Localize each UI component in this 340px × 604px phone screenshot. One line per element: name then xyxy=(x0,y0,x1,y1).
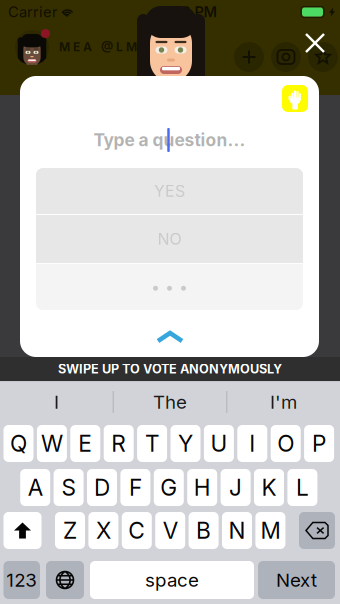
button[interactable]: Next xyxy=(258,561,335,599)
staticText: O xyxy=(277,430,294,457)
button[interactable]: P xyxy=(304,425,334,462)
button[interactable]: Favorites xyxy=(308,42,338,72)
staticText: 123 xyxy=(6,569,37,591)
staticText: H xyxy=(194,474,211,501)
button[interactable]: N xyxy=(222,512,252,549)
button[interactable]: I xyxy=(237,425,267,462)
button[interactable]: F xyxy=(120,469,150,506)
staticText: A xyxy=(28,474,43,501)
button[interactable]: C xyxy=(122,512,152,549)
staticText: D xyxy=(94,474,110,501)
staticText: J xyxy=(229,474,242,501)
button[interactable]: I'm xyxy=(227,381,340,423)
button[interactable]: E xyxy=(70,425,100,462)
button[interactable]: Close xyxy=(299,27,331,59)
staticText: L xyxy=(296,474,309,501)
staticText: Z xyxy=(63,517,77,544)
staticText: W xyxy=(41,430,63,457)
button[interactable]: X xyxy=(88,512,118,549)
button[interactable]: space xyxy=(90,561,254,599)
button[interactable]: The xyxy=(114,381,226,423)
button[interactable]: V xyxy=(155,512,185,549)
button[interactable]: Add xyxy=(234,42,264,72)
button[interactable]: J xyxy=(221,469,251,506)
button[interactable]: Y xyxy=(170,425,200,462)
button[interactable]: T xyxy=(137,425,167,462)
button[interactable]: Delete xyxy=(299,512,335,549)
staticText: X xyxy=(96,517,111,544)
button[interactable]: I xyxy=(0,381,113,423)
button[interactable]: Shift xyxy=(3,512,41,549)
button[interactable]: Next keyboard xyxy=(46,561,84,599)
staticText: NO xyxy=(157,229,181,249)
button[interactable]: H xyxy=(187,469,217,506)
staticText: U xyxy=(210,430,227,457)
button[interactable]: A xyxy=(20,469,50,506)
button[interactable]: L xyxy=(287,469,317,506)
button[interactable]: K xyxy=(254,469,284,506)
staticText: P xyxy=(312,430,326,457)
button[interactable]: Anonymous xyxy=(282,85,308,112)
staticText: F xyxy=(129,474,142,501)
staticText: SWIPE UP TO VOTE ANONYMOUSLY xyxy=(58,361,282,377)
button[interactable]: Q xyxy=(3,425,33,462)
button[interactable]: Z xyxy=(55,512,85,549)
staticText: E xyxy=(78,430,92,457)
button[interactable]: G xyxy=(154,469,184,506)
staticText: M xyxy=(260,517,280,544)
staticText: The xyxy=(153,391,187,413)
staticText: G xyxy=(160,474,177,501)
staticText: I'm xyxy=(270,391,297,413)
button[interactable]: B xyxy=(189,512,219,549)
staticText: space xyxy=(145,569,199,591)
staticText: R xyxy=(111,430,126,457)
staticText: • • • xyxy=(151,277,188,297)
staticText: Q xyxy=(10,430,27,457)
staticText: S xyxy=(62,474,76,501)
button[interactable]: S xyxy=(54,469,84,506)
button[interactable]: R xyxy=(104,425,134,462)
staticText: Type a question... xyxy=(93,129,245,150)
staticText: N xyxy=(228,517,245,544)
button[interactable]: W xyxy=(37,425,67,462)
staticText: V xyxy=(163,517,178,544)
button[interactable]: U xyxy=(204,425,234,462)
button[interactable]: O xyxy=(271,425,301,462)
button[interactable]: D xyxy=(87,469,117,506)
staticText: Y xyxy=(178,430,193,457)
button[interactable]: Camera xyxy=(271,42,301,72)
button[interactable]: M xyxy=(255,512,285,549)
button[interactable]: Swipe up to vote xyxy=(135,323,205,351)
staticText: YES xyxy=(154,181,185,201)
staticText: B xyxy=(196,517,211,544)
staticText: Next xyxy=(276,569,317,591)
staticText: M E A @ L M K xyxy=(59,40,149,54)
staticText: I xyxy=(249,430,255,457)
staticText: I xyxy=(54,391,59,413)
staticText: 5:23 PM xyxy=(158,3,217,21)
staticText: Carrier xyxy=(8,3,58,21)
staticText: C xyxy=(128,517,145,544)
staticText: K xyxy=(261,474,276,501)
staticText: T xyxy=(145,430,159,457)
button[interactable]: 123 xyxy=(3,561,40,599)
